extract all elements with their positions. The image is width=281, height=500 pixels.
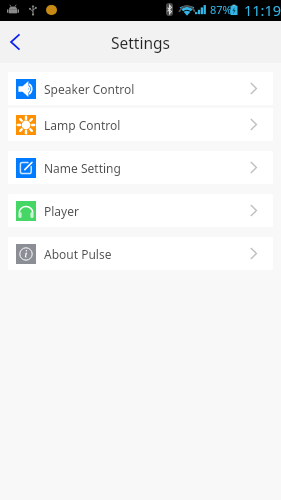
button[interactable]: Speaker Control (8, 72, 273, 105)
button[interactable]: Player (8, 194, 273, 227)
staticText: Lamp Control (44, 117, 121, 133)
staticText: Name Setting (44, 160, 121, 176)
button[interactable]: About Pulse (8, 237, 273, 270)
staticText: Speaker Control (44, 81, 135, 97)
staticText: About Pulse (44, 246, 112, 262)
staticText: Player (44, 203, 79, 219)
staticText: 87% (210, 2, 232, 17)
staticText: Settings (111, 32, 170, 53)
staticText: 11:19 (244, 0, 281, 20)
button[interactable]: Back (0, 21, 32, 63)
button[interactable]: Lamp Control (8, 108, 273, 141)
button[interactable]: Name Setting (8, 151, 273, 184)
